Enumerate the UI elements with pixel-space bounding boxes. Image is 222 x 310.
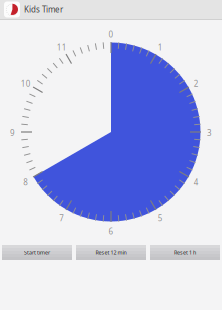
staticText: 3: [207, 127, 212, 138]
staticText: Reset 12 min: [95, 249, 126, 256]
staticText: 1: [158, 42, 163, 53]
staticText: 10: [21, 78, 31, 89]
staticText: Kids Timer: [24, 4, 63, 15]
staticText: 11: [57, 42, 67, 53]
button[interactable]: Start timer: [2, 245, 72, 260]
button[interactable]: Reset 12 min: [76, 245, 146, 260]
staticText: 2: [194, 78, 199, 89]
staticText: Start timer: [24, 249, 50, 256]
button[interactable]: Reset 1 h: [150, 245, 220, 260]
staticText: 9: [10, 127, 15, 138]
staticText: 5: [158, 213, 163, 223]
staticText: 4: [194, 177, 199, 187]
staticText: 6: [108, 226, 113, 237]
staticText: 8: [23, 177, 28, 187]
staticText: Reset 1 h: [174, 249, 196, 256]
staticText: 7: [59, 213, 64, 223]
staticText: 0: [108, 29, 113, 40]
